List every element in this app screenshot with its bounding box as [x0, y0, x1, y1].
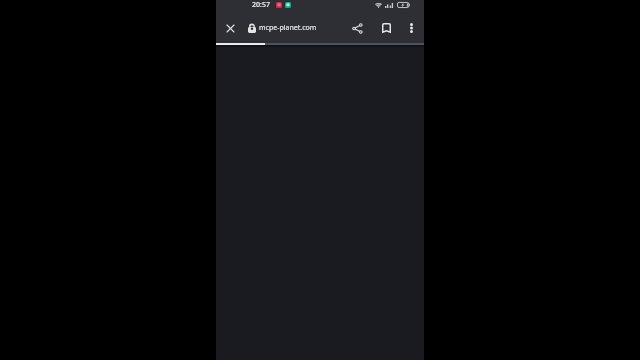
button[interactable]: More options: [400, 17, 422, 39]
staticText: mcpe-planet.com: [259, 23, 317, 33]
staticText: 20:57: [252, 0, 270, 10]
button[interactable]: Share: [346, 17, 368, 39]
button[interactable]: mcpe-planet.com: [241, 17, 321, 39]
button[interactable]: Close: [219, 17, 241, 39]
button[interactable]: Bookmark: [375, 17, 397, 39]
